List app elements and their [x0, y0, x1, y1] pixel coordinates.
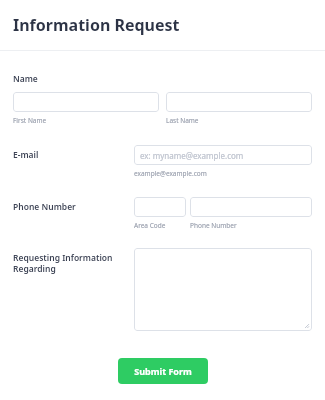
staticText: Phone Number [190, 221, 237, 230]
button[interactable] [190, 197, 312, 217]
staticText: Submit Form [134, 365, 192, 377]
staticText: First Name [13, 116, 47, 125]
button[interactable] [134, 248, 312, 331]
staticText: Area Code [134, 221, 166, 230]
button[interactable]: ex: myname@example.com [134, 145, 312, 165]
button[interactable] [13, 92, 159, 112]
button[interactable]: Submit Form [118, 358, 208, 384]
button[interactable] [166, 92, 312, 112]
staticText: Phone Number [13, 201, 76, 213]
staticText: Requesting Information Regarding [13, 252, 113, 274]
staticText: E-mail [13, 149, 39, 161]
staticText: ex: myname@example.com [140, 150, 244, 161]
staticText: Last Name [166, 116, 199, 125]
staticText: example@example.com [134, 169, 207, 178]
button[interactable] [134, 197, 186, 217]
staticText: Name [13, 73, 38, 85]
staticText: Information Request [13, 14, 180, 36]
